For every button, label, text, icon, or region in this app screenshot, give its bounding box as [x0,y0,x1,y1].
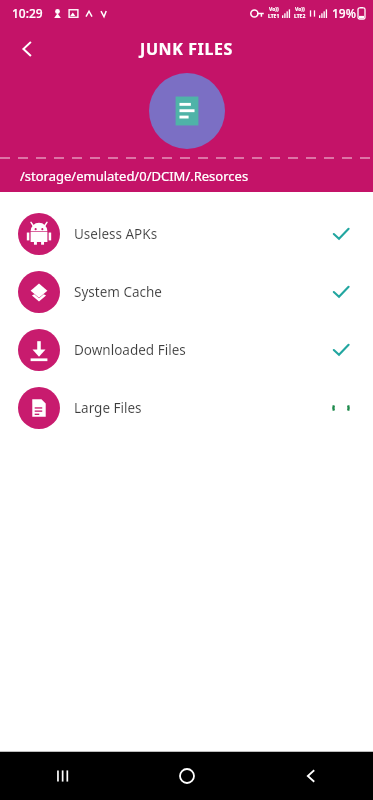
staticText: Large Files [74,399,142,417]
button[interactable]: Recent apps [0,752,125,800]
staticText: LTE1 [268,13,280,20]
staticText: 10:29 [12,5,43,21]
staticText: LTE2 [294,13,306,20]
button[interactable]: Home [125,752,249,800]
button[interactable]: Downloaded Files [0,321,373,379]
staticText: Useless APKs [74,225,158,243]
staticText: JUNK FILES [140,38,233,60]
staticText: /storage/emulated/0/DCIM/.Resorces [20,167,249,185]
button[interactable]: Useless APKs [0,205,373,263]
button[interactable]: Back [6,28,48,70]
staticText: Downloaded Files [74,341,186,359]
staticText: Vo)) [295,6,305,13]
button[interactable]: Back [249,752,373,800]
button[interactable]: Large Files [0,379,373,437]
staticText: System Cache [74,283,162,301]
staticText: Vo)) [269,6,279,13]
staticText: 19% [332,5,356,21]
button[interactable]: System Cache [0,263,373,321]
